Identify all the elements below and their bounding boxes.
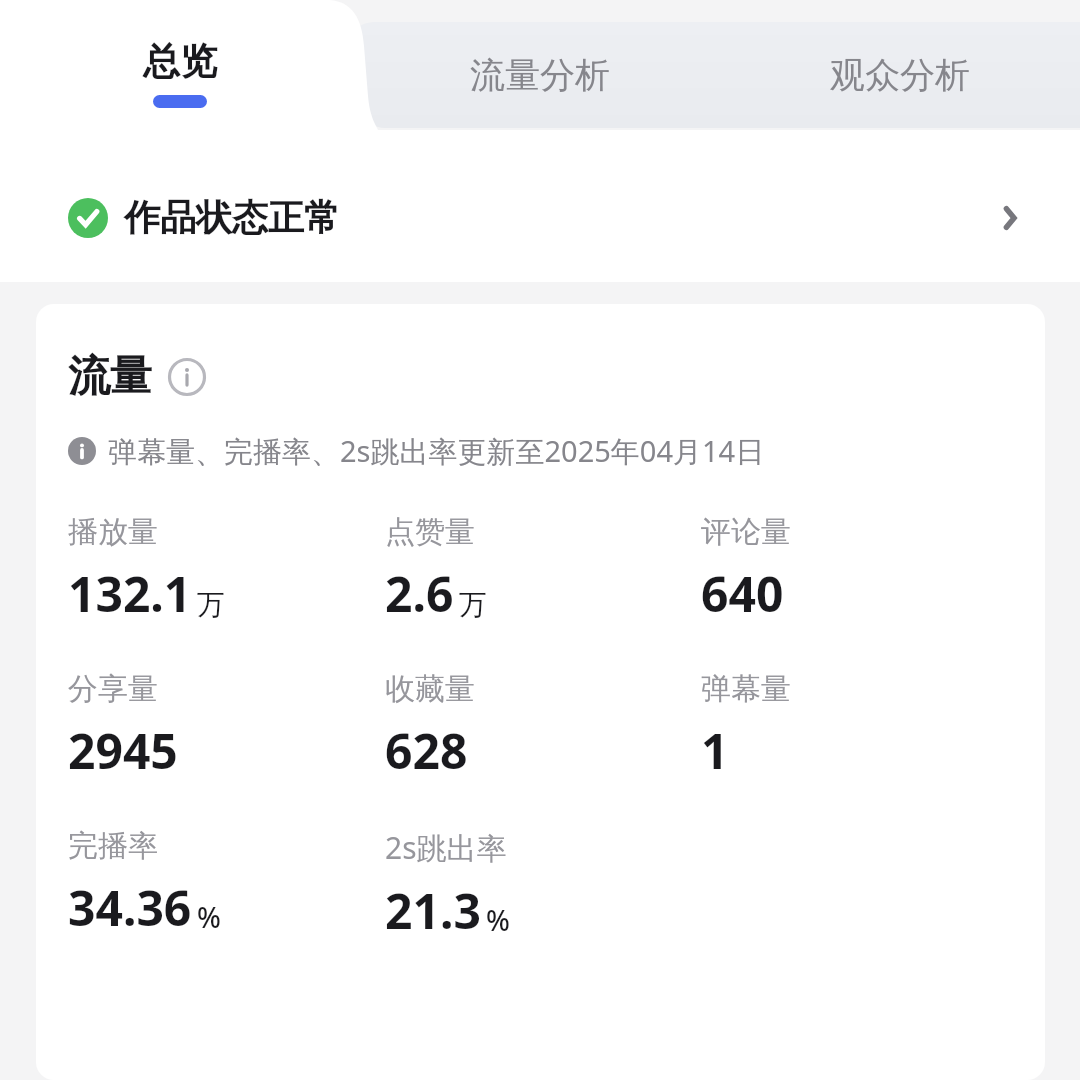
staticText: 640 [701,561,784,626]
button[interactable]: 弹幕量 [701,670,1017,783]
staticText: 分享量 [68,670,158,708]
staticText: 2945 [68,718,178,783]
button[interactable]: 流量说明 [168,358,206,396]
staticText: 完播率 [68,827,158,865]
button[interactable]: 作品状态正常 [0,152,1080,282]
button[interactable]: 流量分析 [420,22,660,128]
staticText: 1 [701,718,729,783]
staticText: 34.36 [68,875,192,940]
staticText: 弹幕量 [701,670,791,708]
staticText: 2s跳出率 [385,827,507,868]
staticText: 观众分析 [830,53,970,97]
staticText: 628 [385,718,468,783]
staticText: 2.6 [385,561,454,626]
button[interactable]: 完播率 [68,827,385,940]
staticText: 弹幕量、完播率、2s跳出率更新至2025年04月14日 [108,431,765,471]
staticText: 总览 [143,38,217,85]
staticText: 评论量 [701,513,791,551]
staticText: 播放量 [68,513,158,551]
staticText: 流量 [68,350,152,403]
staticText: % [197,898,221,936]
staticText: 21.3 [385,878,481,943]
staticText: 收藏量 [385,670,475,708]
button[interactable]: 收藏量 [385,670,701,783]
button[interactable]: 观众分析 [780,22,1020,128]
staticText: 132.1 [68,561,192,626]
button[interactable]: 2s跳出率 [385,827,701,943]
staticText: % [486,901,510,939]
button[interactable]: 点赞量 [385,513,701,626]
button[interactable]: 播放量 [68,513,385,626]
button[interactable]: 总览 [60,0,300,130]
other: 查看作品状态详情 [992,200,1028,236]
button[interactable]: 评论量 [701,513,1017,626]
button[interactable]: 分享量 [68,670,385,783]
staticText: 流量分析 [470,53,610,97]
staticText: 点赞量 [385,513,475,551]
staticText: 万 [459,587,487,622]
staticText: 万 [197,587,225,622]
staticText: 作品状态正常 [124,195,340,240]
